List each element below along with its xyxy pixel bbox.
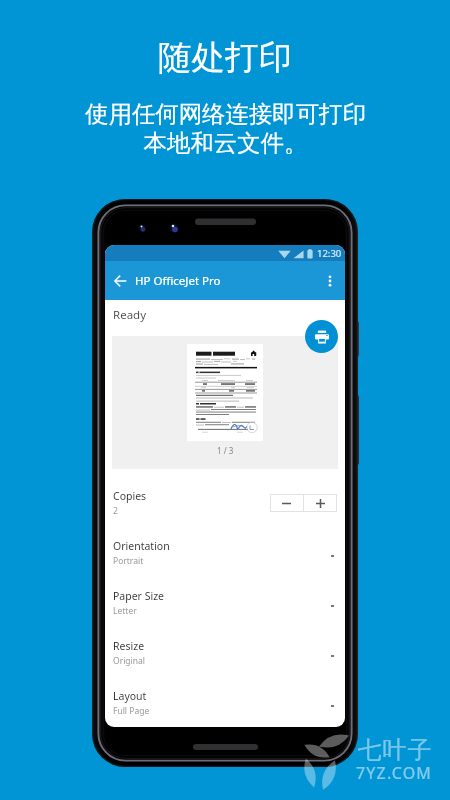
- staticText: 7YZ.COM: [356, 762, 433, 784]
- button[interactable]: Back: [105, 261, 135, 300]
- staticText: Resize: [113, 639, 145, 653]
- staticText: Full Page: [113, 705, 150, 717]
- button[interactable]: Layout: [105, 678, 345, 727]
- staticText: Original: [113, 655, 145, 667]
- staticText: Ready: [113, 307, 147, 323]
- button[interactable]: Increase copies: [304, 494, 337, 512]
- button[interactable]: Resize: [105, 628, 345, 678]
- staticText: Layout: [113, 689, 147, 703]
- staticText: HP OfficeJet Pro: [135, 273, 221, 289]
- staticText: Portrait: [113, 555, 144, 567]
- staticText: 随处打印: [158, 37, 292, 79]
- staticText: 使用任何网络连接即可打印 本地和云文件。: [85, 99, 366, 158]
- button[interactable]: Copies: [105, 478, 345, 528]
- staticText: 1 / 3: [217, 445, 234, 456]
- staticText: 七叶子: [357, 735, 432, 765]
- staticText: 2: [113, 505, 118, 517]
- staticText: Letter: [113, 605, 137, 617]
- staticText: 12:30: [317, 247, 342, 260]
- button[interactable]: Print: [305, 320, 338, 353]
- button[interactable]: More options: [315, 261, 345, 300]
- button[interactable]: Orientation: [105, 528, 345, 578]
- button[interactable]: Paper Size: [105, 578, 345, 628]
- button[interactable]: Decrease copies: [270, 494, 303, 512]
- staticText: Copies: [113, 489, 147, 503]
- staticText: Orientation: [113, 539, 170, 553]
- staticText: Paper Size: [113, 589, 165, 603]
